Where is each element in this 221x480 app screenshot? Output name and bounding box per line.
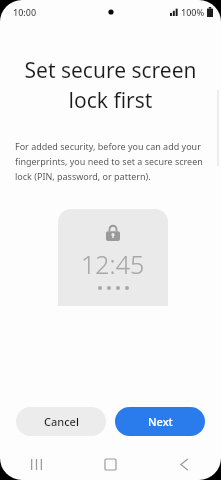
staticText: Set secure screen lock first — [17, 56, 204, 114]
button[interactable]: Back — [147, 448, 221, 480]
staticText: 100% — [181, 6, 205, 18]
staticText: Next — [148, 414, 173, 429]
button[interactable]: Cancel — [16, 407, 106, 436]
staticText: 10:00 — [13, 6, 37, 18]
staticText: 12:45 — [81, 247, 145, 281]
staticText: For added security, before you can add y… — [15, 140, 208, 182]
button[interactable]: Next — [115, 407, 205, 436]
staticText: Cancel — [44, 414, 79, 429]
button[interactable]: Recent apps — [0, 448, 73, 480]
button[interactable]: Home — [73, 448, 147, 480]
